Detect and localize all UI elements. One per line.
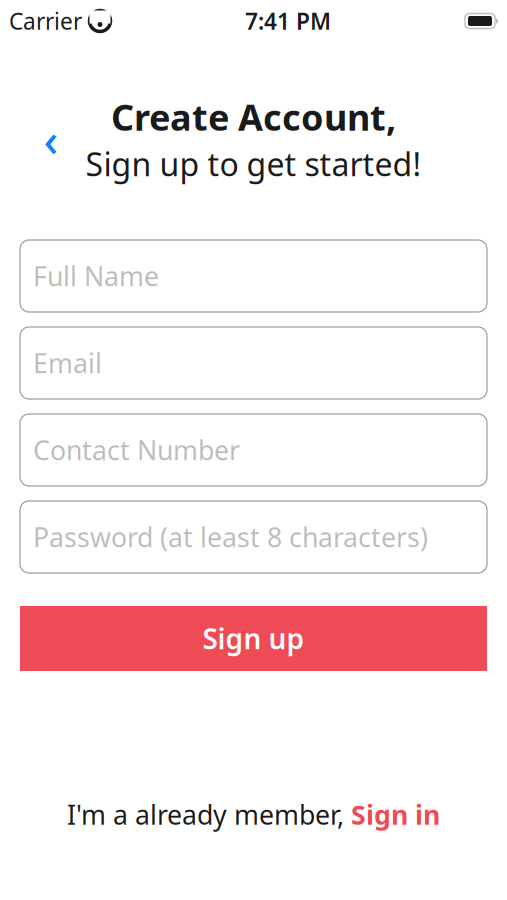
button[interactable]: I'm a already member, <box>51 789 456 840</box>
staticText: Full Name <box>33 258 159 294</box>
staticText: Email <box>33 345 102 381</box>
staticText: Sign up to get started! <box>85 143 421 185</box>
staticText: I'm a already member, <box>67 797 351 832</box>
staticText: Create Account, <box>111 93 396 141</box>
button[interactable]: Password (at least 8 characters) <box>20 501 487 573</box>
staticText: Password (at least 8 characters) <box>33 519 428 555</box>
staticText: Contact Number <box>33 432 240 468</box>
button[interactable]: Full Name <box>20 240 487 312</box>
staticText: Carrier <box>9 6 82 36</box>
button[interactable]: Back <box>28 116 74 162</box>
staticText: 7:41 PM <box>245 6 331 36</box>
staticText: Sign in <box>351 797 440 832</box>
button[interactable]: Sign up <box>20 606 487 671</box>
staticText: Sign up <box>202 620 304 657</box>
button[interactable]: Email <box>20 327 487 399</box>
staticText: ‹ <box>43 109 58 169</box>
button[interactable]: Contact Number <box>20 414 487 486</box>
